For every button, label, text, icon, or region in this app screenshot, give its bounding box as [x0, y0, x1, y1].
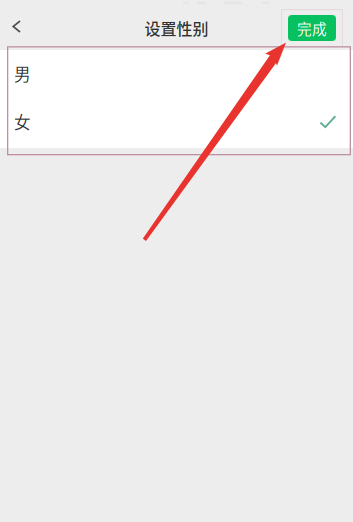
button[interactable]: 男	[0, 51, 353, 99]
button[interactable]: Back	[0, 0, 34, 50]
staticText: 设置性别	[144, 16, 208, 40]
button[interactable]: 女	[0, 99, 353, 147]
staticText: 女	[14, 109, 31, 133]
staticText: 男	[14, 61, 31, 85]
staticText: 完成	[297, 17, 327, 39]
button[interactable]: 完成	[288, 15, 336, 41]
